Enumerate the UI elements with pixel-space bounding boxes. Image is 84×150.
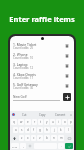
staticText: Convert <box>55 113 66 117</box>
staticText: v <box>39 136 41 140</box>
staticText: Cut <box>22 113 27 117</box>
staticText: a <box>15 128 17 132</box>
staticText: f <box>33 128 35 132</box>
staticText: 5. Golf Getaway <box>13 82 38 86</box>
staticText: r <box>34 120 36 124</box>
staticText: w <box>20 120 23 124</box>
staticText: Count/odds: 30 <box>13 86 34 90</box>
staticText: 2. iPhone <box>13 52 28 56</box>
button[interactable]: Cut <box>15 111 33 118</box>
staticText: New Golf <box>13 95 27 99</box>
staticText: ?123 <box>12 145 18 148</box>
button[interactable]: l <box>65 127 71 133</box>
button[interactable]: More options <box>69 113 72 116</box>
staticText: y <box>46 120 48 124</box>
button[interactable]: 3. Laptop <box>10 61 74 71</box>
button[interactable]: p <box>68 119 73 125</box>
button[interactable]: Key <box>27 143 33 149</box>
button[interactable]: Enter <box>65 143 73 149</box>
button[interactable]: Key <box>11 135 18 141</box>
button[interactable]: f <box>31 127 36 133</box>
staticText: 3. Laptop <box>13 62 28 66</box>
button[interactable]: Convert <box>51 111 69 118</box>
staticText: Count/odds: 12 <box>13 66 34 70</box>
button[interactable]: 5. Golf Getaway <box>10 81 74 91</box>
staticText: i <box>58 120 59 124</box>
button[interactable]: New Golf <box>13 93 60 102</box>
button[interactable]: Delete <box>63 52 71 60</box>
staticText: j <box>54 128 55 132</box>
button[interactable]: 4. Xbox Onoris <box>10 71 74 81</box>
staticText: p <box>70 120 72 124</box>
button[interactable]: Delete <box>63 82 71 90</box>
button[interactable]: Delete <box>63 72 71 80</box>
button[interactable]: w <box>18 119 24 125</box>
staticText: o <box>64 120 66 124</box>
button[interactable]: m <box>58 135 64 141</box>
staticText: 1. Movie Ticket <box>13 42 37 46</box>
staticText: Copy <box>39 113 46 117</box>
button[interactable]: Copy <box>33 111 51 118</box>
button[interactable]: . <box>58 143 64 149</box>
button[interactable]: 1. Movie Ticket <box>10 41 74 51</box>
staticText: h <box>46 128 48 132</box>
staticText: u <box>52 120 54 124</box>
staticText: z <box>21 136 23 140</box>
button[interactable]: i <box>56 119 61 125</box>
staticText: d <box>27 128 29 132</box>
button[interactable]: b <box>44 135 50 141</box>
button[interactable]: r <box>32 119 37 125</box>
button[interactable]: x <box>25 135 30 141</box>
button[interactable]: d <box>25 127 30 133</box>
button[interactable]: ?123 <box>11 143 19 149</box>
button[interactable]: s <box>19 127 24 133</box>
staticText: m <box>60 136 63 140</box>
staticText: . <box>61 144 62 148</box>
staticText: Count/odds: 10 <box>13 56 34 60</box>
button[interactable]: t <box>38 119 43 125</box>
button[interactable]: n <box>51 135 57 141</box>
button[interactable]: o <box>62 119 67 125</box>
button[interactable]: Delete <box>63 42 71 50</box>
staticText: x <box>27 136 29 140</box>
staticText: b <box>46 136 48 140</box>
button[interactable]: j <box>51 127 57 133</box>
staticText: l <box>68 128 69 132</box>
staticText: k <box>60 128 62 132</box>
staticText: t <box>40 120 42 124</box>
button[interactable]: 2. iPhone <box>10 51 74 61</box>
button[interactable]: q <box>11 119 17 125</box>
staticText: n <box>53 136 55 140</box>
button[interactable]: c <box>31 135 36 141</box>
staticText: c <box>33 136 35 140</box>
staticText: s <box>21 128 23 132</box>
staticText: 4. Xbox Onoris <box>13 72 36 76</box>
button[interactable]: e <box>25 119 31 125</box>
button[interactable]: , <box>20 143 26 149</box>
button[interactable]: Key <box>65 135 73 141</box>
button[interactable]: v <box>37 135 43 141</box>
button[interactable]: u <box>50 119 55 125</box>
staticText: e <box>27 120 29 124</box>
button[interactable]: y <box>44 119 49 125</box>
button[interactable]: z <box>19 135 24 141</box>
staticText: Count/odds: 17 <box>13 76 34 80</box>
button[interactable]: Delete <box>63 62 71 70</box>
staticText: , <box>23 144 24 148</box>
button[interactable]: h <box>44 127 50 133</box>
button[interactable]: Add item <box>63 93 71 101</box>
staticText: Count/odds: 25 <box>13 46 34 50</box>
button[interactable]: a <box>13 127 18 133</box>
staticText: q <box>13 120 15 124</box>
button[interactable]: g <box>37 127 43 133</box>
staticText: g <box>39 128 41 132</box>
button[interactable]: k <box>58 127 64 133</box>
staticText: Enter raffle items <box>9 14 75 24</box>
